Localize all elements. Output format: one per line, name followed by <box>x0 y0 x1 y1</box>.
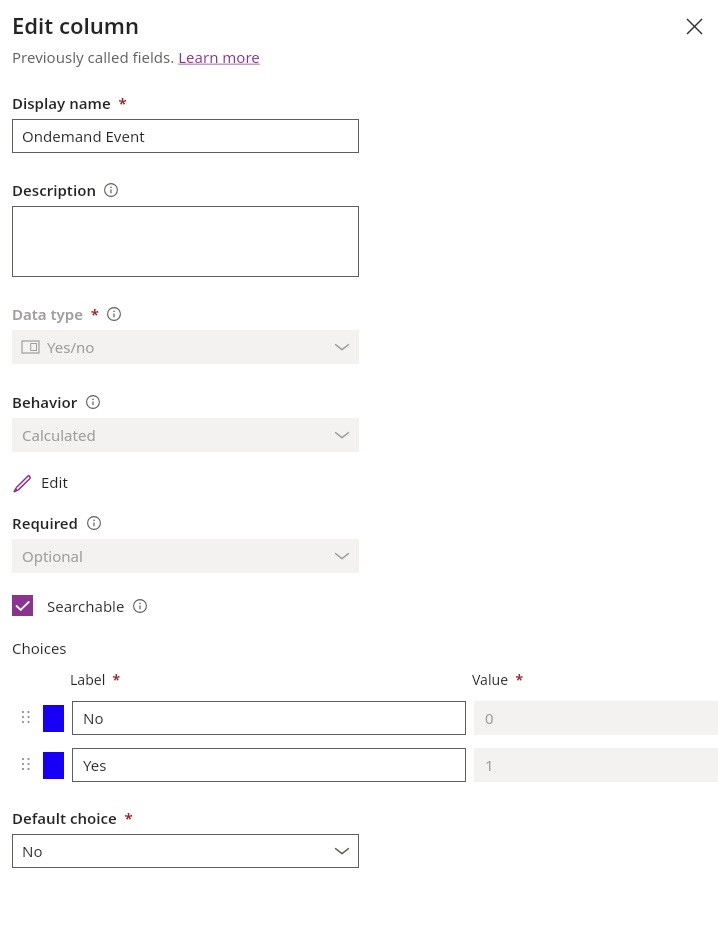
staticText: Value * <box>472 670 524 689</box>
staticText: No <box>83 708 104 728</box>
button[interactable]: Reorder <box>20 754 32 776</box>
button[interactable]: Optional <box>12 539 359 573</box>
button[interactable]: Edit <box>12 472 74 492</box>
staticText: Behavior <box>12 392 78 412</box>
button[interactable]: Searchable <box>12 595 147 616</box>
button[interactable]: Yes <box>72 748 466 782</box>
staticText: Edit <box>41 472 68 492</box>
staticText: 1 <box>485 755 494 775</box>
button[interactable] <box>12 206 359 277</box>
staticText: Label * <box>70 670 121 689</box>
staticText: Calculated <box>22 425 335 445</box>
button[interactable]: No <box>12 834 359 868</box>
button[interactable]: 1 <box>474 748 718 782</box>
staticText: Ondemand Event <box>22 126 145 146</box>
staticText: No <box>22 841 335 861</box>
staticText: Choices <box>12 638 67 658</box>
staticText: Yes/no <box>47 337 335 357</box>
button[interactable]: Close <box>678 10 710 42</box>
button[interactable]: No <box>72 701 466 735</box>
button[interactable]: Yes/no <box>12 330 359 364</box>
button[interactable]: 0 <box>474 701 718 735</box>
staticText: Previously called fields. Learn more <box>12 47 260 67</box>
staticText: Optional <box>22 546 335 566</box>
staticText: Default choice * <box>12 808 133 828</box>
button[interactable]: Ondemand Event <box>12 119 359 153</box>
staticText: Display name * <box>12 93 127 113</box>
staticText: Edit column <box>12 10 139 40</box>
button[interactable]: Calculated <box>12 418 359 452</box>
staticText: Description <box>12 180 96 200</box>
button[interactable]: Reorder <box>20 707 32 729</box>
staticText: Data type * <box>12 304 99 324</box>
staticText: 0 <box>485 708 494 728</box>
staticText: Required <box>12 513 79 533</box>
staticText: Yes <box>83 755 107 775</box>
staticText: Searchable <box>47 596 125 616</box>
